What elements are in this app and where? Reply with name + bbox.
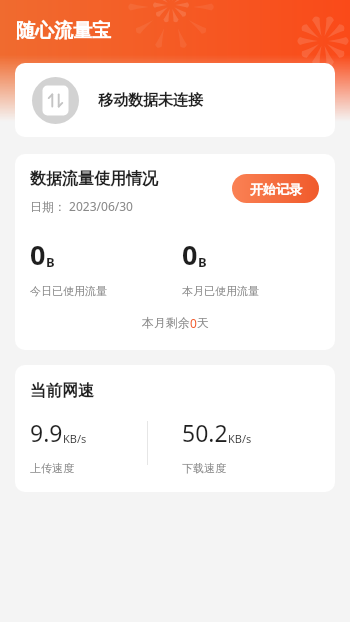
staticText: 本月已使用流量	[182, 284, 259, 298]
staticText: 0	[190, 315, 197, 331]
staticText: 随心流量宝	[16, 19, 111, 43]
staticText: KB/s	[63, 431, 87, 446]
staticText: 50.2	[182, 417, 228, 448]
staticText: 数据流量使用情况	[30, 169, 158, 189]
staticText: B	[198, 253, 207, 271]
staticText: 上传速度	[30, 461, 74, 475]
staticText: 下载速度	[182, 461, 226, 475]
staticText: 移动数据未连接	[98, 91, 203, 110]
staticText: B	[46, 253, 55, 271]
staticText: 开始记录	[250, 181, 302, 197]
staticText: 日期： 2023/06/30	[30, 198, 133, 214]
staticText: 今日已使用流量	[30, 284, 107, 298]
staticText: 9.9	[30, 417, 63, 448]
button[interactable]: 开始记录	[232, 174, 319, 203]
staticText: 当前网速	[30, 381, 94, 401]
staticText: 0	[30, 236, 46, 273]
staticText: 0	[182, 236, 198, 273]
staticText: KB/s	[228, 431, 252, 446]
button[interactable]: 移动数据未连接	[15, 63, 335, 137]
staticText: 天	[197, 315, 209, 330]
staticText: 本月剩余	[142, 315, 190, 330]
